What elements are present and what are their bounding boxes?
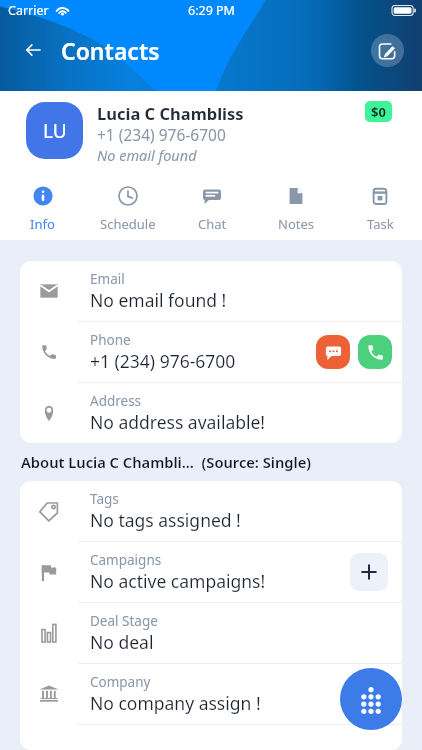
button[interactable]: Send message [316, 335, 350, 369]
staticText: No email found ! [90, 288, 227, 312]
staticText: No company assign ! [90, 691, 261, 715]
staticText: Schedule [100, 215, 156, 233]
staticText: +1 (234) 976-6700 [90, 349, 236, 373]
staticText: 6:29 PM [188, 2, 235, 19]
staticText: No email found [97, 145, 197, 165]
staticText: Info [30, 215, 55, 233]
staticText: Deal Stage [90, 612, 158, 630]
button[interactable]: Add campaign [350, 553, 388, 591]
staticText: About Lucia C Chambli... (Source: Single… [21, 452, 312, 472]
staticText: No deal [90, 630, 154, 654]
staticText: No active campaigns! [90, 569, 266, 593]
staticText: Company [90, 673, 151, 691]
button[interactable]: Tags [20, 481, 402, 541]
button[interactable]: Task [338, 175, 422, 240]
button[interactable]: Info [0, 175, 85, 240]
staticText: Phone [90, 331, 131, 349]
staticText: Address [90, 392, 142, 410]
button[interactable]: Campaigns [20, 542, 402, 602]
button[interactable]: Schedule [85, 175, 170, 240]
button[interactable]: Notes [254, 175, 338, 240]
button[interactable]: Chat [170, 175, 254, 240]
staticText: Task [367, 215, 394, 233]
staticText: Carrier [8, 2, 49, 19]
staticText: Chat [198, 215, 227, 233]
staticText: Campaigns [90, 551, 162, 569]
button[interactable]: Email [20, 261, 402, 321]
button[interactable]: Edit [371, 34, 404, 67]
staticText: LU [43, 118, 67, 144]
button[interactable]: Call [358, 335, 392, 369]
staticText: +1 (234) 976-6700 [97, 124, 226, 145]
staticText: Notes [278, 215, 314, 233]
staticText: Tags [90, 490, 119, 508]
staticText: Email [90, 270, 125, 288]
button[interactable]: Dialpad [340, 668, 402, 730]
staticText: $0 [371, 103, 386, 121]
button[interactable]: Company [20, 664, 402, 724]
staticText: Contacts [61, 35, 160, 66]
staticText: No address available! [90, 410, 266, 434]
button[interactable]: Phone [20, 322, 402, 382]
button[interactable]: Address [20, 383, 402, 443]
button[interactable]: Deal Stage [20, 603, 402, 663]
staticText: No tags assigned ! [90, 508, 241, 532]
button[interactable]: Back [16, 33, 50, 67]
staticText: Lucia C Chambliss [97, 102, 244, 124]
